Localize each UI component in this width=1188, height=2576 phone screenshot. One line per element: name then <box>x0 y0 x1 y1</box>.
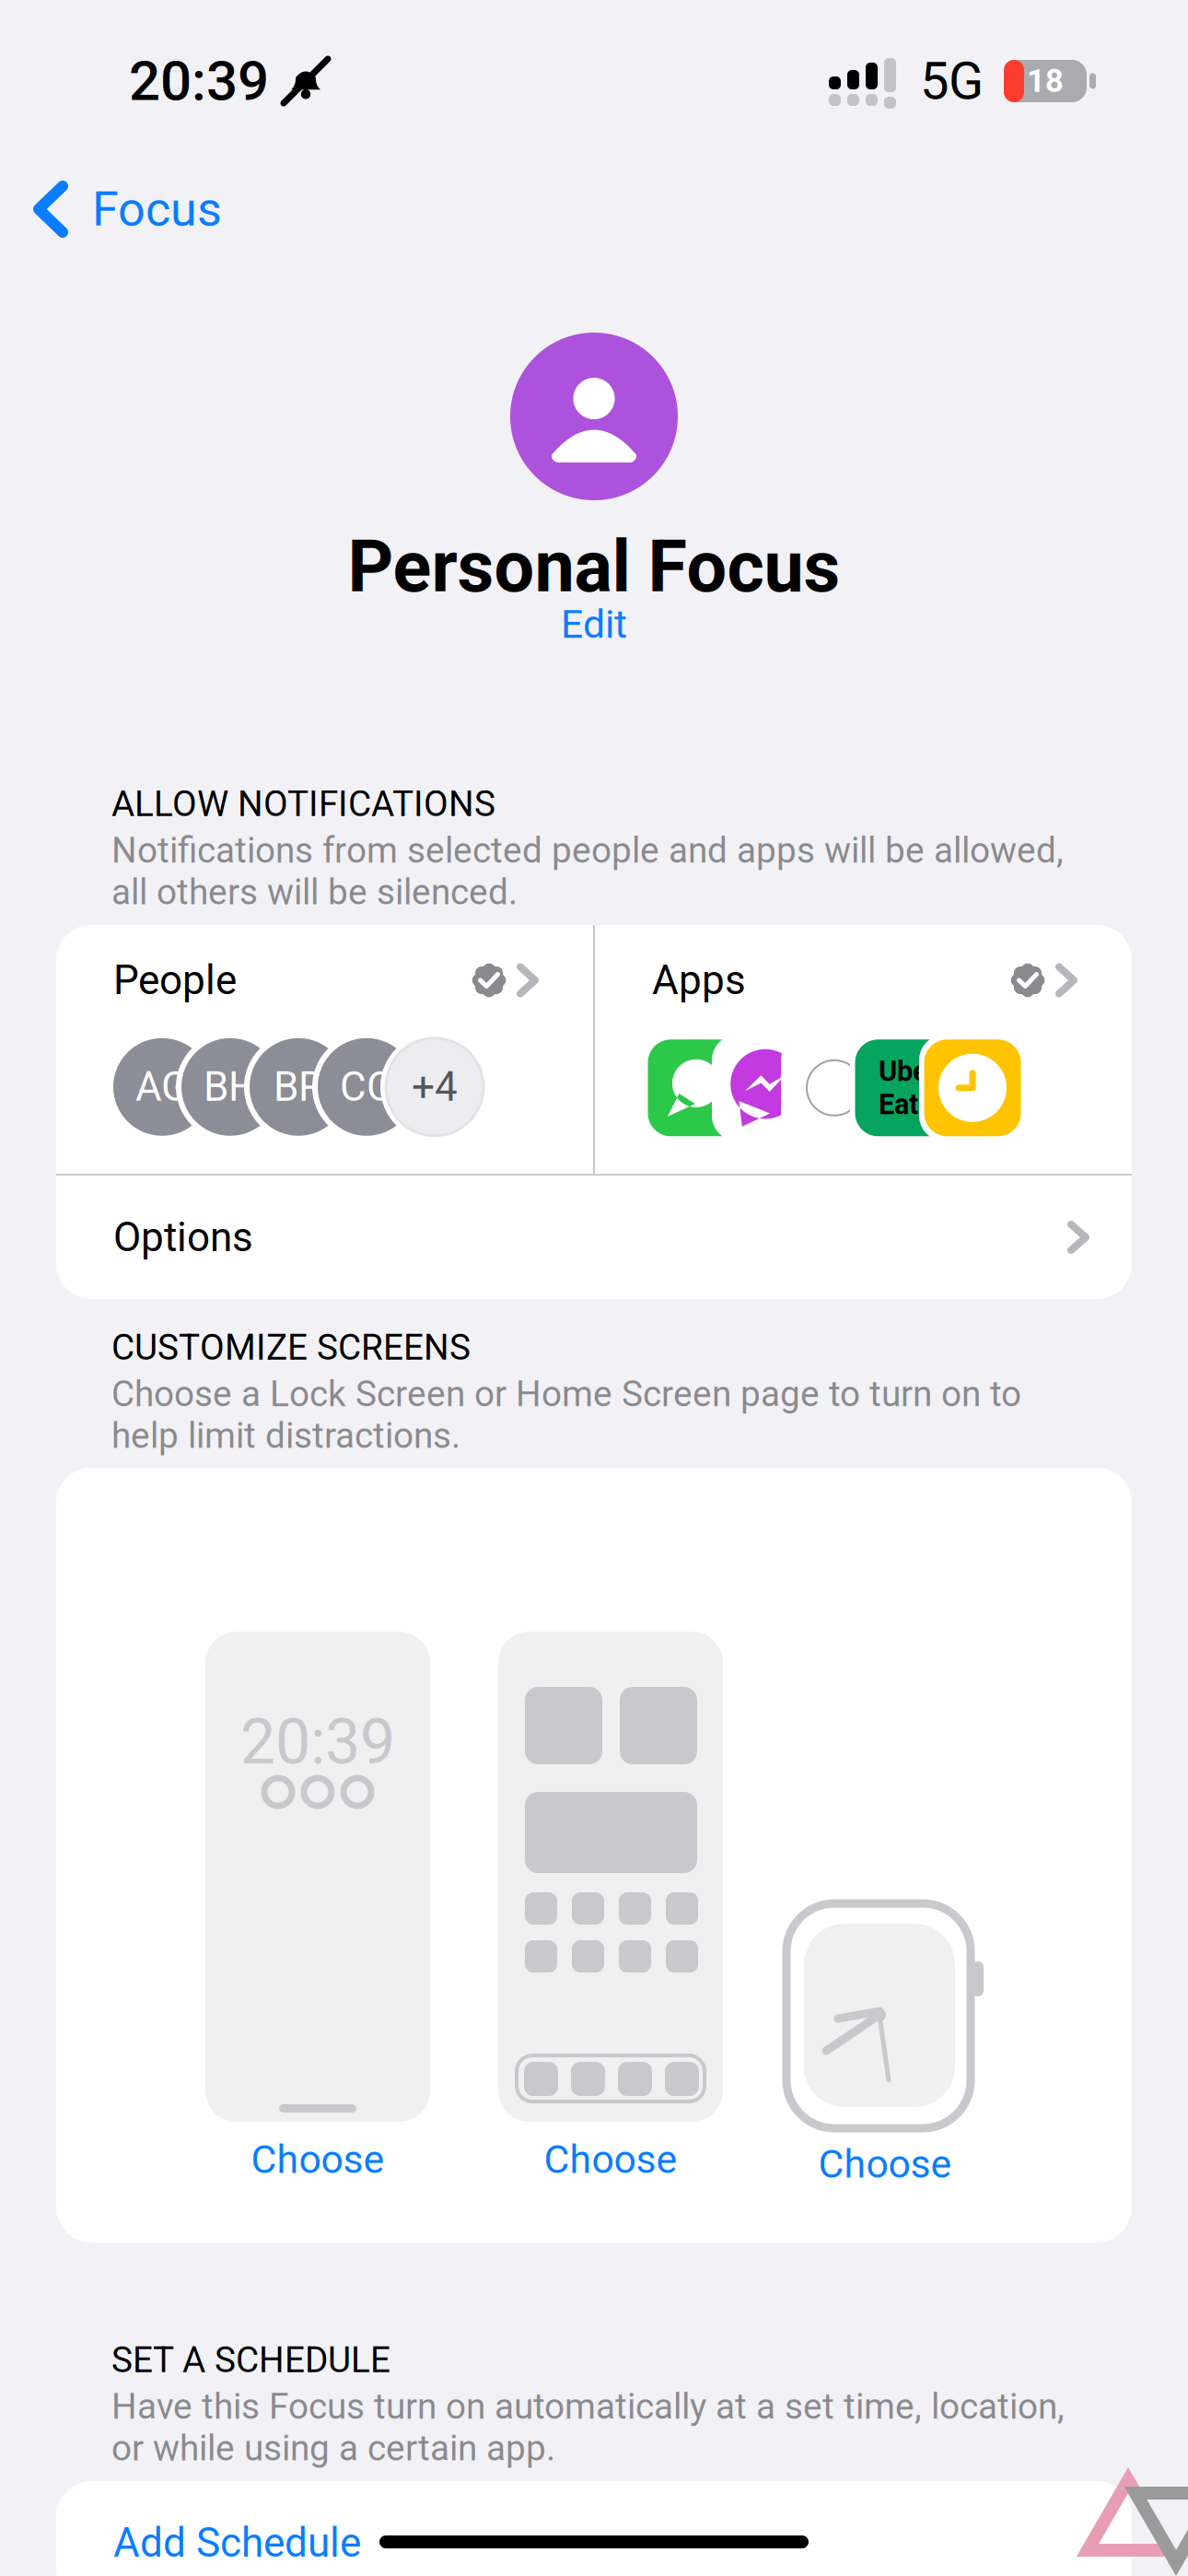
staticText: Have this Focus turn on automatically at… <box>111 2386 1065 2469</box>
staticText: Focus <box>92 181 222 237</box>
staticText: Notifications from selected people and a… <box>111 829 1064 913</box>
staticText: Choose a Lock Screen or Home Screen page… <box>111 1373 1021 1457</box>
staticText: BR <box>274 1063 323 1111</box>
staticText: Choose <box>251 2137 384 2183</box>
staticText: BH <box>204 1063 257 1111</box>
button[interactable]: Options <box>56 1176 1132 1299</box>
staticText: People <box>113 957 237 1004</box>
staticText: 20:39 <box>240 1705 395 1779</box>
staticText: Apps <box>652 957 746 1004</box>
staticText: 5G <box>920 51 984 111</box>
staticText: Choose <box>818 2141 952 2187</box>
button[interactable]: People <box>56 926 593 1173</box>
staticText: Choose <box>544 2137 677 2183</box>
button[interactable]: Choose <box>498 1632 723 2183</box>
staticText: +4 <box>412 1063 458 1111</box>
staticText: Edit <box>561 601 627 647</box>
staticText: CUSTOMIZE SCREENS <box>111 1327 471 1368</box>
staticText: Add Schedule <box>113 2519 361 2567</box>
staticText: Ube Eat <box>879 1055 928 1121</box>
staticText: CC <box>340 1063 393 1111</box>
staticText: AG <box>135 1063 189 1111</box>
staticText: 20:39 <box>129 49 269 113</box>
staticText: SET A SCHEDULE <box>111 2339 390 2381</box>
staticText: Personal Focus <box>348 525 840 609</box>
button[interactable]: Focus <box>0 158 387 260</box>
staticText: 18 <box>1027 62 1064 100</box>
staticText: ALLOW NOTIFICATIONS <box>111 783 495 825</box>
button[interactable]: Choose <box>786 1903 984 2187</box>
button[interactable]: Edit <box>533 594 655 655</box>
button[interactable]: 20:39 <box>205 1632 430 2183</box>
staticText: Options <box>113 1214 253 1261</box>
button[interactable]: Add Schedule <box>56 2481 1132 2576</box>
button[interactable]: Apps <box>595 926 1132 1173</box>
